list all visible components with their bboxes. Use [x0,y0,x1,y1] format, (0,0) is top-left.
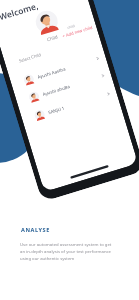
staticText: SANJU 1 [47,104,65,115]
staticText: Select Child [18,52,42,64]
button[interactable]: SANJU 1 [20,83,119,129]
button[interactable]: Ayushi Aastha [9,48,108,93]
staticText: Ayushi ahuBa [42,83,71,97]
staticText: Use our automated assessment system to g… [20,241,112,261]
button[interactable]: Ayushi ahuBa [14,65,113,111]
staticText: Welcome, [0,0,40,23]
staticText: + Add new child [62,25,93,40]
staticText: ANALYSE [21,226,50,234]
staticText: child [67,23,76,30]
staticText: Ayushi Aastha [37,66,66,80]
staticText: Child [46,33,58,42]
